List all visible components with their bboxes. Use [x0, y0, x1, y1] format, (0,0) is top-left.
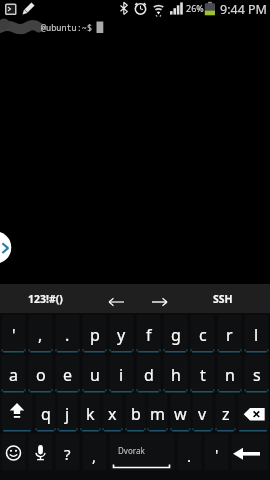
button[interactable]: e: [54, 353, 81, 393]
staticText: u: [90, 364, 100, 386]
staticText: 26%: [186, 2, 204, 14]
button[interactable]: g: [162, 313, 189, 353]
staticText: n: [225, 364, 235, 386]
button[interactable]: Dvorak: [108, 432, 176, 472]
button[interactable]: t: [189, 353, 216, 393]
button[interactable]: ': [203, 432, 230, 472]
staticText: ': [215, 444, 219, 464]
staticText: f: [146, 324, 152, 346]
staticText: s: [253, 364, 261, 386]
button[interactable]: n: [216, 353, 243, 393]
button[interactable]: v: [191, 392, 214, 432]
button[interactable]: l: [243, 313, 270, 353]
button[interactable]: s: [243, 353, 270, 393]
staticText: d: [144, 364, 154, 386]
button[interactable]: k: [79, 392, 102, 432]
staticText: h: [171, 364, 181, 386]
button[interactable]: r: [216, 313, 243, 353]
button[interactable]: d: [135, 353, 162, 393]
button[interactable]: x: [101, 392, 124, 432]
button[interactable]: ,: [27, 313, 54, 353]
button[interactable]: u: [81, 353, 108, 393]
staticText: e: [63, 364, 73, 386]
button[interactable]: ,: [81, 432, 108, 472]
staticText: q: [41, 403, 51, 425]
staticText: c: [199, 324, 207, 346]
button[interactable]: [0, 231, 12, 264]
staticText: y: [117, 324, 126, 346]
button[interactable]: p: [81, 313, 108, 353]
staticText: l: [254, 324, 259, 346]
button[interactable]: b: [124, 392, 147, 432]
button[interactable]: m: [146, 392, 169, 432]
button[interactable]: [236, 392, 270, 432]
staticText: w: [174, 403, 187, 425]
staticText: ': [12, 324, 16, 346]
staticText: a: [9, 364, 18, 386]
staticText: k: [86, 403, 95, 425]
staticText: 9:44 PM: [220, 1, 267, 18]
staticText: r: [226, 324, 233, 346]
staticText: .: [187, 446, 192, 466]
button[interactable]: z: [214, 392, 237, 432]
staticText: x: [108, 403, 117, 425]
staticText: m: [150, 403, 165, 425]
button[interactable]: c: [189, 313, 216, 353]
button[interactable]: y: [108, 313, 135, 353]
staticText: g: [171, 324, 181, 346]
button[interactable]: [95, 284, 135, 313]
staticText: ,: [92, 446, 97, 466]
staticText: Dvorak: [118, 445, 145, 456]
staticText: t: [200, 364, 206, 386]
button[interactable]: ?: [54, 432, 81, 472]
button[interactable]: SSH: [195, 284, 250, 313]
staticText: v: [198, 403, 207, 425]
staticText: 123!#(): [28, 292, 63, 306]
staticText: .: [65, 324, 70, 346]
button[interactable]: w: [169, 392, 192, 432]
button[interactable]: [230, 432, 270, 472]
button[interactable]: .: [176, 432, 203, 472]
staticText: p: [90, 324, 100, 346]
staticText: SSH: [213, 292, 233, 306]
button[interactable]: .: [54, 313, 81, 353]
staticText: i: [119, 364, 124, 386]
button[interactable]: ': [0, 313, 27, 353]
button[interactable]: 123!#(): [10, 284, 80, 313]
staticText: j: [65, 403, 70, 425]
button[interactable]: [140, 284, 180, 313]
button[interactable]: a: [0, 353, 27, 393]
staticText: ?: [64, 444, 71, 464]
button[interactable]: i: [108, 353, 135, 393]
button[interactable]: j: [56, 392, 79, 432]
staticText: ,: [38, 324, 43, 346]
staticText: z: [222, 403, 230, 425]
staticText: @ubuntu:~$: [41, 22, 93, 34]
button[interactable]: f: [135, 313, 162, 353]
button[interactable]: q: [34, 392, 57, 432]
button[interactable]: h: [162, 353, 189, 393]
button[interactable]: o: [27, 353, 54, 393]
button[interactable]: [0, 392, 34, 432]
button[interactable]: [27, 432, 54, 472]
button[interactable]: [0, 432, 27, 472]
staticText: o: [36, 364, 46, 386]
staticText: b: [131, 403, 141, 425]
